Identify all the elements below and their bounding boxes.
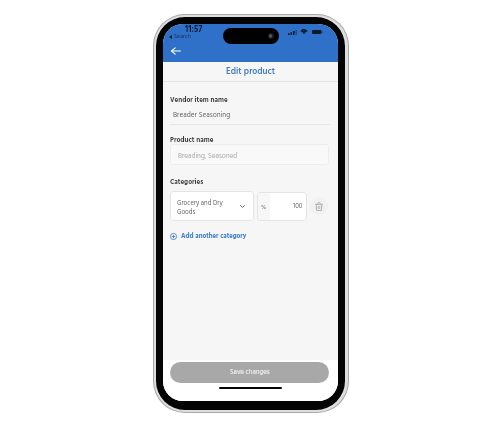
staticText: Search (174, 32, 191, 41)
button[interactable]: Breading, Seasoned (170, 144, 329, 165)
staticText: % (261, 202, 267, 212)
staticText: Grocery and Dry Goods (177, 198, 223, 217)
staticText: Product name (170, 135, 214, 146)
staticText: Breading, Seasoned (178, 151, 238, 162)
staticText: Save changes (230, 367, 270, 378)
staticText: Vendor item name (170, 95, 228, 106)
button[interactable]: Back (166, 41, 186, 61)
staticText: Categories (170, 177, 204, 188)
staticText: Edit product (226, 65, 276, 79)
staticText: 100 (293, 201, 303, 212)
button[interactable]: % (257, 192, 307, 221)
button[interactable]: Add another category (170, 230, 247, 243)
button[interactable]: Save changes (170, 362, 329, 383)
staticText: Add another category (181, 231, 247, 242)
button[interactable]: Grocery and Dry Goods (170, 191, 254, 221)
staticText: 11:57 (185, 24, 203, 37)
staticText: Breader Seasoning (173, 109, 231, 121)
button[interactable]: Delete category (310, 197, 328, 215)
